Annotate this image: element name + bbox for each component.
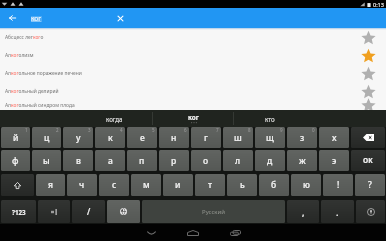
button[interactable]: ж xyxy=(287,150,317,171)
staticText: з xyxy=(300,132,305,144)
staticText: кто xyxy=(265,115,275,123)
staticText: 4 xyxy=(120,127,123,133)
button[interactable]: OK xyxy=(351,150,385,171)
button[interactable]: б xyxy=(259,174,289,196)
button[interactable]: ь xyxy=(227,174,257,196)
staticText: когда xyxy=(106,115,123,123)
button[interactable]: / xyxy=(72,200,105,223)
button[interactable] xyxy=(351,127,385,148)
button[interactable]: т xyxy=(195,174,225,196)
staticText: 7 xyxy=(216,127,219,133)
button[interactable]: я xyxy=(36,174,65,196)
button[interactable]: Clear search xyxy=(110,8,130,28)
button[interactable]: к xyxy=(95,127,125,148)
staticText: ког xyxy=(188,113,199,122)
staticText: п xyxy=(139,155,145,167)
button[interactable]: ? xyxy=(355,174,385,196)
button[interactable]: Абсцесс легкого xyxy=(0,28,386,46)
button[interactable]: Back xyxy=(0,8,24,28)
staticText: м xyxy=(143,179,150,191)
staticText: Алкогольное поражение печени xyxy=(5,70,82,77)
staticText: 1 xyxy=(25,127,28,133)
staticText: я xyxy=(48,179,53,191)
button[interactable]: ?123 xyxy=(1,200,36,223)
button[interactable]: д xyxy=(255,150,285,171)
button[interactable]: ю xyxy=(291,174,321,196)
button[interactable]: а xyxy=(95,150,125,171)
button[interactable]: ф xyxy=(1,150,30,171)
button[interactable]: Алкогольное поражение печени xyxy=(0,64,386,82)
staticText: ф xyxy=(12,155,19,167)
staticText: ь xyxy=(240,179,245,191)
staticText: Алкогольный делирий xyxy=(5,88,59,95)
staticText: о xyxy=(203,155,209,167)
staticText: а xyxy=(108,155,113,167)
staticText: х xyxy=(332,132,337,144)
staticText: л xyxy=(235,155,241,167)
button[interactable]: с xyxy=(99,174,129,196)
staticText: к xyxy=(108,132,113,144)
button[interactable]: у xyxy=(63,127,93,148)
staticText: ы xyxy=(43,155,50,167)
staticText: 5 xyxy=(152,127,155,133)
button[interactable]: Алкогольный делирий xyxy=(0,82,386,100)
button[interactable]: . xyxy=(321,200,354,223)
staticText: ! xyxy=(337,179,340,191)
button[interactable]: г xyxy=(191,127,221,148)
staticText: ?123 xyxy=(12,208,26,216)
staticText: 0:13 xyxy=(373,1,384,8)
button[interactable]: м xyxy=(131,174,161,196)
button[interactable]: , xyxy=(287,200,319,223)
button[interactable]: о xyxy=(191,150,221,171)
button[interactable]: ч xyxy=(67,174,97,196)
button[interactable]: л xyxy=(223,150,253,171)
staticText: й xyxy=(13,132,19,144)
button[interactable] xyxy=(356,200,385,223)
staticText: Алкоголизм xyxy=(5,52,34,59)
staticText: . xyxy=(336,206,339,218)
button[interactable]: з xyxy=(287,127,317,148)
button[interactable]: Алкоголизм xyxy=(0,46,386,64)
staticText: щ xyxy=(266,132,274,144)
staticText: ? xyxy=(368,179,372,191)
button[interactable]: и xyxy=(163,174,193,196)
staticText: ч xyxy=(79,179,85,191)
button[interactable] xyxy=(107,200,140,223)
staticText: е xyxy=(140,132,145,144)
button[interactable]: ког xyxy=(153,110,233,127)
button[interactable]: в xyxy=(63,150,93,171)
button[interactable]: ! xyxy=(323,174,353,196)
staticText: / xyxy=(87,206,91,218)
button[interactable]: й xyxy=(1,127,30,148)
staticText: н xyxy=(171,132,177,144)
button[interactable]: когда xyxy=(76,110,152,127)
staticText: 2 xyxy=(56,127,59,133)
button[interactable]: ы xyxy=(32,150,61,171)
button[interactable] xyxy=(1,174,34,196)
button[interactable]: п xyxy=(127,150,157,171)
button[interactable]: ц xyxy=(32,127,61,148)
button[interactable]: Home xyxy=(183,225,203,241)
button[interactable]: Русский xyxy=(142,200,285,223)
staticText: Абсцесс легкого xyxy=(5,34,44,41)
button[interactable] xyxy=(38,200,70,223)
button[interactable]: Hide keyboard xyxy=(141,225,161,241)
button[interactable]: Recent apps xyxy=(225,225,245,241)
button[interactable]: кто xyxy=(234,110,306,127)
button[interactable]: р xyxy=(159,150,189,171)
staticText: OK xyxy=(363,156,373,165)
button[interactable]: н xyxy=(159,127,189,148)
staticText: э xyxy=(332,155,337,167)
button[interactable]: х xyxy=(319,127,349,148)
staticText: и xyxy=(175,179,181,191)
button[interactable]: щ xyxy=(255,127,285,148)
staticText: ког xyxy=(31,14,42,23)
button[interactable]: э xyxy=(319,150,349,171)
button[interactable]: ш xyxy=(223,127,253,148)
staticText: ш xyxy=(234,132,242,144)
staticText: ж xyxy=(299,155,306,167)
button[interactable]: Алкогольный синдром плода xyxy=(0,100,386,110)
staticText: г xyxy=(204,132,208,144)
button[interactable]: е xyxy=(127,127,157,148)
staticText: 9 xyxy=(280,127,283,133)
